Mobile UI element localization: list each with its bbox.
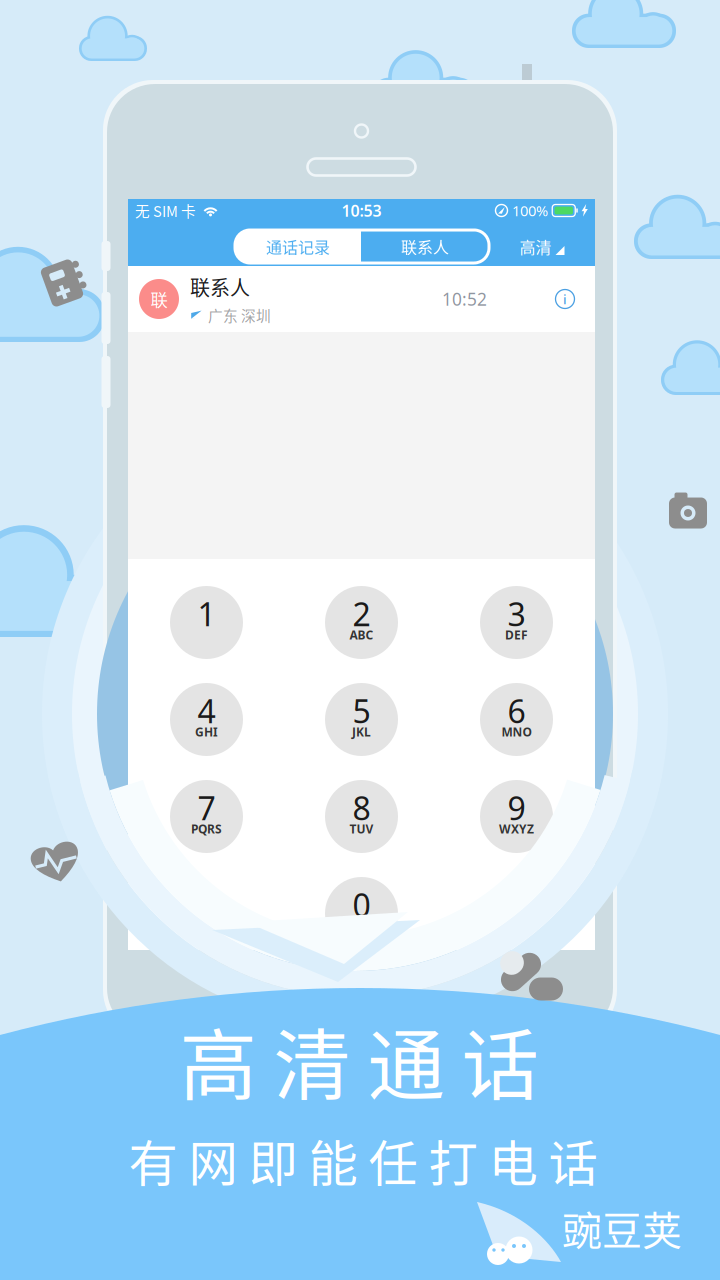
button[interactable]: 3 xyxy=(480,586,553,659)
staticText: 6 xyxy=(507,689,525,732)
button[interactable]: 6 xyxy=(480,683,553,756)
staticText: DEF xyxy=(505,627,528,643)
button[interactable]: 4 xyxy=(170,683,243,756)
button[interactable]: 9 xyxy=(480,780,553,853)
staticText: 3 xyxy=(507,592,525,635)
button[interactable]: 8 xyxy=(325,780,398,853)
staticText: GHI xyxy=(195,724,218,740)
button[interactable]: 高清 xyxy=(511,230,572,263)
button[interactable]: 0 xyxy=(325,877,398,950)
button[interactable]: 联系人 xyxy=(361,230,489,263)
staticText: 联系人 xyxy=(190,272,250,301)
staticText: 0 xyxy=(352,883,370,926)
staticText: 100% xyxy=(512,201,548,220)
staticText: PQRS xyxy=(191,821,222,837)
button[interactable]: 通话记录 xyxy=(235,230,361,263)
button[interactable]: 2 xyxy=(325,586,398,659)
button[interactable]: 1 xyxy=(170,586,243,659)
staticText: 联 xyxy=(150,286,167,312)
staticText: JKL xyxy=(352,724,371,740)
staticText: TUV xyxy=(349,821,373,837)
staticText: 9 xyxy=(507,786,525,829)
staticText: ABC xyxy=(349,627,373,643)
staticText: WXYZ xyxy=(499,821,534,837)
staticText: 10:52 xyxy=(442,287,487,310)
staticText: 联系人 xyxy=(401,235,449,258)
staticText: 10:53 xyxy=(341,200,381,221)
staticText: 通话记录 xyxy=(266,235,330,258)
staticText: 有 网 即 能 任 打 电 话 xyxy=(128,1124,597,1196)
staticText: 4 xyxy=(197,689,215,732)
staticText: 2 xyxy=(352,592,370,635)
staticText: 1 xyxy=(197,592,215,635)
staticText: 高清 xyxy=(519,235,551,258)
staticText: MNO xyxy=(501,724,531,740)
staticText: i xyxy=(563,290,567,308)
staticText: 8 xyxy=(352,786,370,829)
staticText: 高 清 通 话 xyxy=(179,1004,538,1116)
staticText: 5 xyxy=(352,689,370,732)
staticText: 无 SIM 卡 xyxy=(135,200,196,221)
button[interactable]: 5 xyxy=(325,683,398,756)
button[interactable]: 联 xyxy=(128,266,595,332)
staticText: 7 xyxy=(197,786,215,829)
staticText: 豌豆荚 xyxy=(562,1199,682,1257)
staticText: 广东 深圳 xyxy=(208,304,271,326)
button[interactable]: 7 xyxy=(170,780,243,853)
